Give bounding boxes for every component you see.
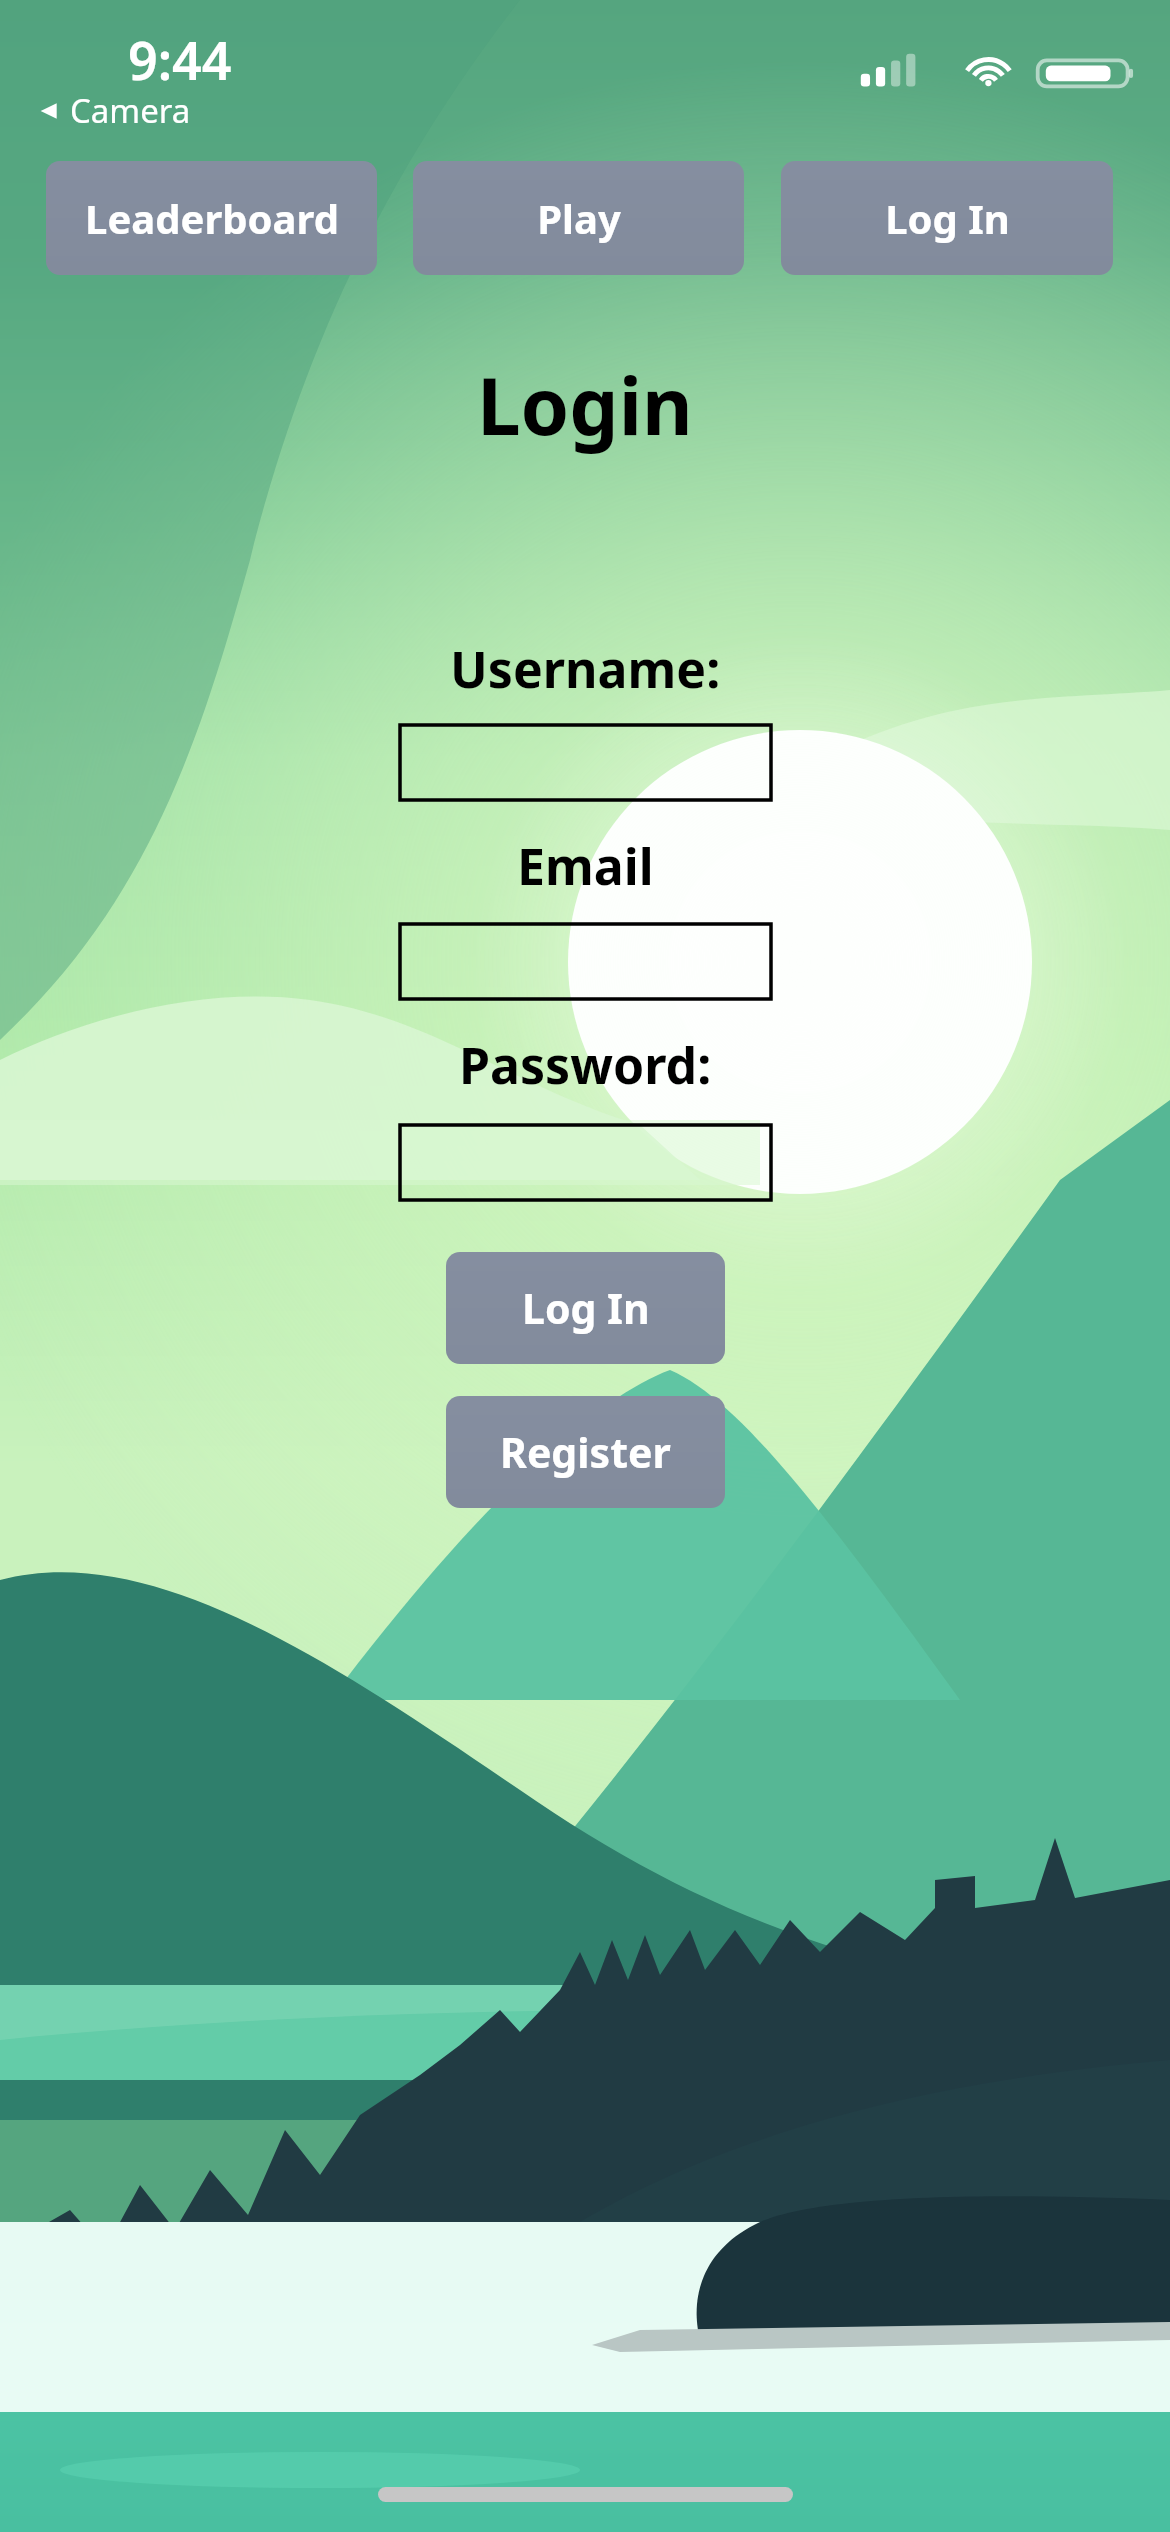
staticText: Login <box>477 352 693 458</box>
button[interactable] <box>400 1125 771 1200</box>
staticText: Camera <box>70 88 191 133</box>
staticText: Register <box>500 1424 671 1480</box>
button[interactable]: Log In <box>446 1252 725 1364</box>
staticText: Log In <box>522 1280 650 1336</box>
staticText: Username: <box>450 635 721 703</box>
button[interactable] <box>400 725 771 800</box>
button[interactable]: Log In <box>781 161 1113 275</box>
staticText: Email <box>517 832 654 900</box>
staticText: Play <box>537 191 621 245</box>
staticText: Password: <box>459 1031 712 1099</box>
button[interactable]: Play <box>413 161 744 275</box>
staticText: Log In <box>885 191 1010 245</box>
button[interactable]: Leaderboard <box>46 161 377 275</box>
staticText: Leaderboard <box>85 191 339 245</box>
staticText: 9:44 <box>128 24 232 95</box>
button[interactable]: Register <box>446 1396 725 1508</box>
button[interactable] <box>400 924 771 999</box>
